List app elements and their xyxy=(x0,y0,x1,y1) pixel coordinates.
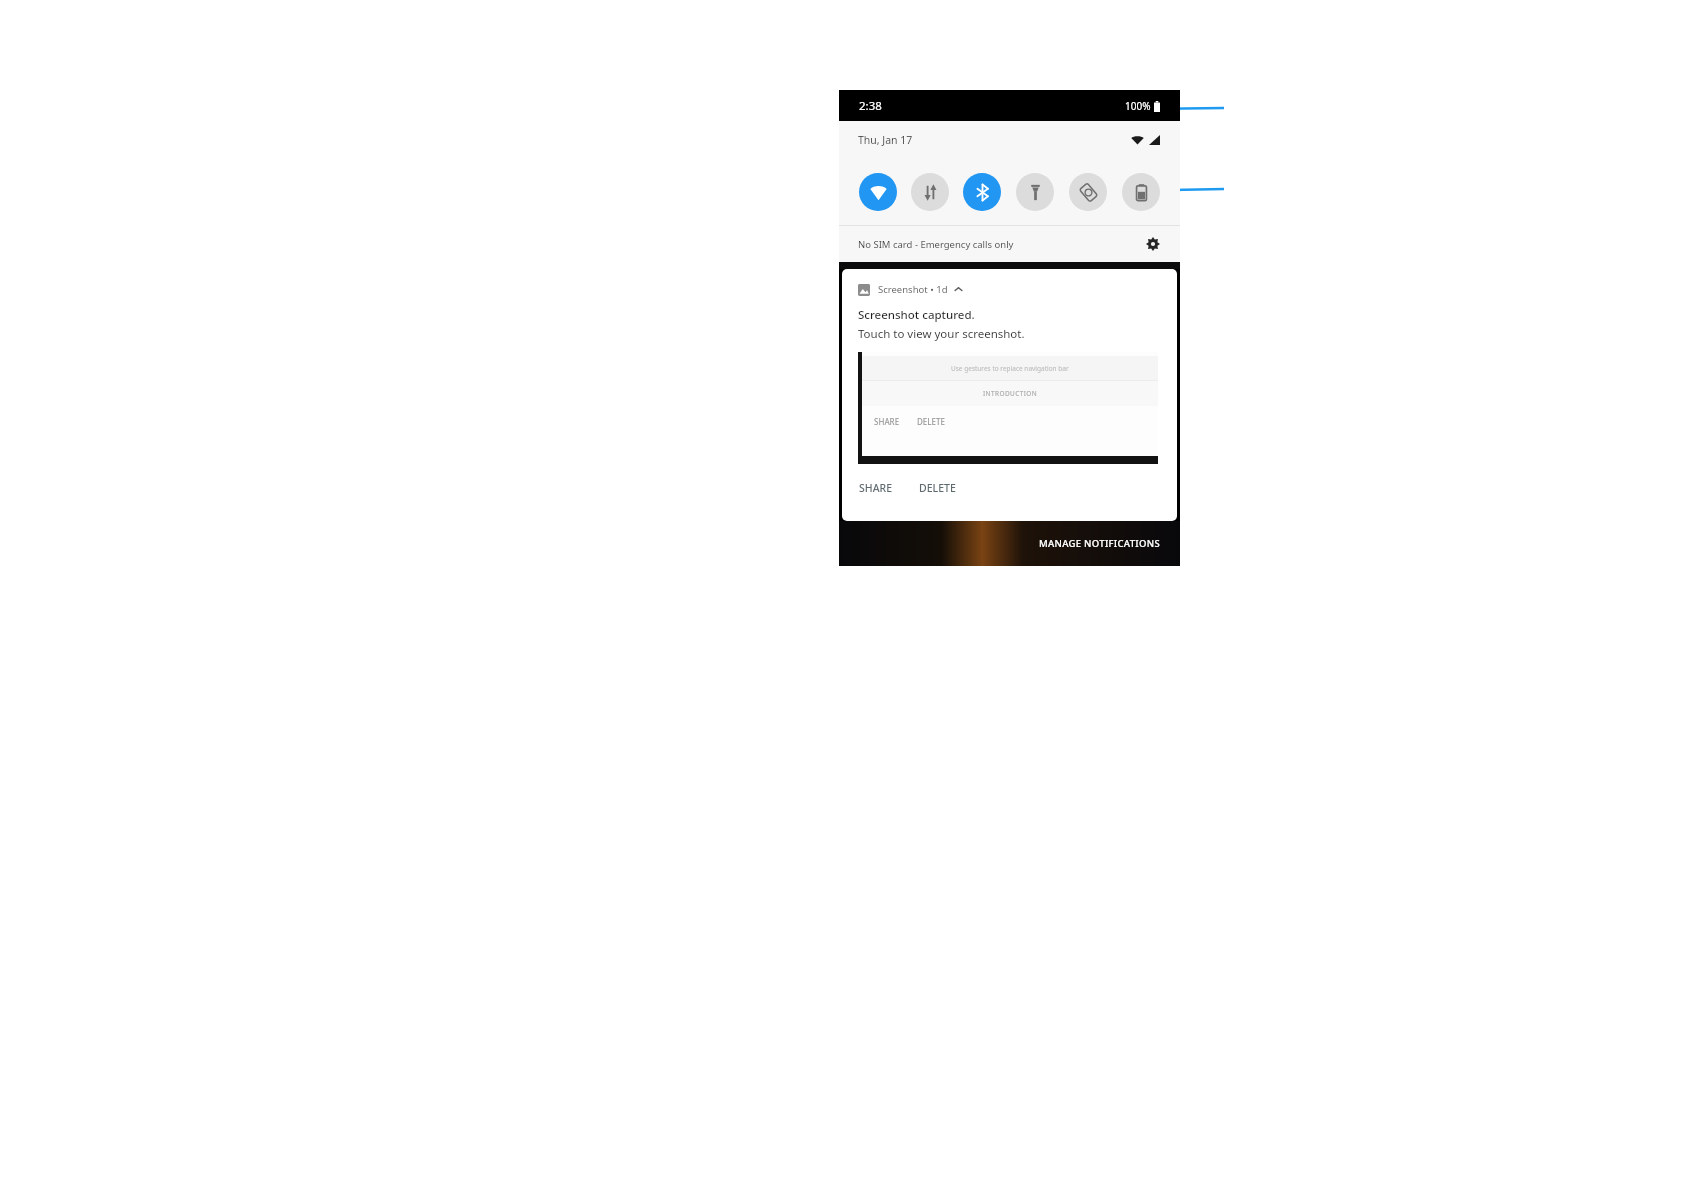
staticText: MANAGE NOTIFICATIONS xyxy=(1039,537,1160,550)
staticText: DELETE xyxy=(919,481,956,495)
button[interactable]: Mobile data xyxy=(904,170,956,214)
button[interactable]: Auto-rotate xyxy=(1061,170,1114,214)
staticText: Screenshot captured. xyxy=(858,307,975,323)
staticText: Touch to view your screenshot. xyxy=(858,326,1025,342)
button[interactable]: Bluetooth xyxy=(956,170,1008,214)
staticText: SHARE xyxy=(874,416,900,427)
staticText: Use gestures to replace navigation bar xyxy=(951,364,1069,373)
staticText: 2:38 xyxy=(859,98,882,114)
button[interactable]: DELETE xyxy=(917,477,958,499)
button[interactable]: SHARE xyxy=(857,477,894,499)
button[interactable]: MANAGE NOTIFICATIONS xyxy=(1035,533,1164,554)
staticText: No SIM card - Emergency calls only xyxy=(858,238,1014,251)
button[interactable]: Wi-Fi xyxy=(852,170,904,214)
staticText: DELETE xyxy=(917,416,945,427)
button[interactable]: Screenshot • 1d xyxy=(842,269,1177,521)
staticText: SHARE xyxy=(859,481,892,495)
button[interactable]: Flashlight xyxy=(1008,170,1061,214)
staticText: Screenshot • 1d xyxy=(878,283,948,296)
staticText: 100% xyxy=(1125,99,1151,113)
button[interactable]: Settings xyxy=(1142,233,1164,255)
staticText: INTRODUCTION xyxy=(983,389,1038,398)
button[interactable]: Battery saver xyxy=(1114,170,1167,214)
staticText: Thu, Jan 17 xyxy=(858,133,913,147)
